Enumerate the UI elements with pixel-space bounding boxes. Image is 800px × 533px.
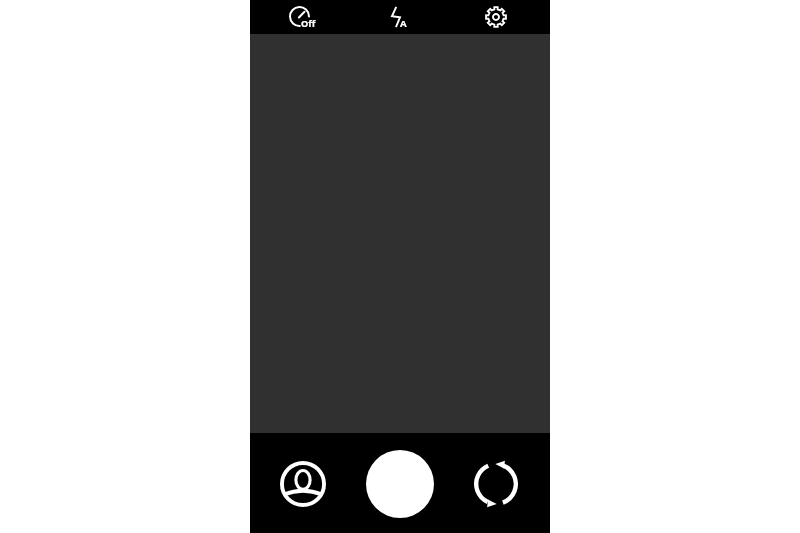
button[interactable]: Timer off bbox=[276, 0, 328, 33]
button[interactable]: Flash auto bbox=[380, 0, 420, 33]
staticText: Off bbox=[301, 17, 316, 30]
staticText: A bbox=[400, 17, 407, 30]
button[interactable]: Take photo bbox=[359, 444, 440, 524]
button[interactable]: Portrait mode bbox=[272, 452, 334, 516]
button[interactable]: Settings bbox=[476, 0, 517, 33]
button[interactable]: Switch camera bbox=[466, 452, 526, 516]
